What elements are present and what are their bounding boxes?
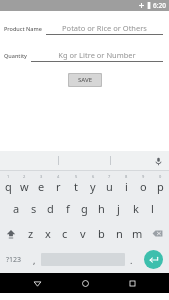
button[interactable]: c xyxy=(56,221,74,246)
button[interactable]: Backspace xyxy=(146,221,169,246)
button[interactable]: 6 xyxy=(84,171,101,196)
button[interactable]: v xyxy=(74,221,92,246)
staticText: Kg or Litre or Number xyxy=(31,50,163,60)
button[interactable]: 1 xyxy=(0,171,16,196)
staticText: f xyxy=(66,201,70,216)
button[interactable]: 2 xyxy=(16,171,33,196)
staticText: Quantity xyxy=(4,52,27,59)
button[interactable]: j xyxy=(110,196,127,221)
button[interactable]: 8 xyxy=(118,171,135,196)
staticText: Product Name xyxy=(4,25,42,32)
staticText: 9 xyxy=(142,174,145,179)
button[interactable]: 9 xyxy=(135,171,152,196)
staticText: b xyxy=(98,226,105,241)
staticText: , xyxy=(33,254,36,266)
button[interactable]: a xyxy=(8,196,25,221)
button[interactable]: Recents xyxy=(122,273,142,293)
button[interactable]: 0 xyxy=(152,171,169,196)
staticText: SAVE xyxy=(78,76,93,84)
staticText: z xyxy=(28,226,34,241)
staticText: v xyxy=(80,226,86,241)
button[interactable]: m xyxy=(128,221,146,246)
button[interactable]: 5 xyxy=(67,171,84,196)
staticText: k xyxy=(133,201,139,216)
staticText: s xyxy=(31,201,37,216)
staticText: i xyxy=(125,179,128,194)
staticText: m xyxy=(132,226,143,241)
staticText: 3 xyxy=(40,174,43,179)
button[interactable]: Home xyxy=(75,273,95,293)
staticText: 2 xyxy=(23,174,26,179)
button[interactable]: Kg or Litre or Number xyxy=(31,50,163,62)
button[interactable]: z xyxy=(22,221,39,246)
staticText: t xyxy=(74,179,78,194)
button[interactable]: l xyxy=(144,196,161,221)
staticText: u xyxy=(106,179,113,194)
staticText: h xyxy=(98,201,105,216)
staticText: r xyxy=(56,179,61,194)
button[interactable]: x xyxy=(39,221,56,246)
staticText: 1 xyxy=(7,174,10,179)
staticText: . xyxy=(130,254,133,266)
button[interactable]: f xyxy=(59,196,76,221)
button[interactable]: Enter xyxy=(144,250,163,269)
button[interactable]: Potato or Rice or Others xyxy=(46,23,163,35)
staticText: a xyxy=(13,201,20,216)
button[interactable]: ?123 xyxy=(0,246,28,273)
button[interactable]: k xyxy=(127,196,144,221)
button[interactable]: . xyxy=(125,246,138,273)
staticText: ?123 xyxy=(6,255,22,265)
staticText: o xyxy=(140,179,147,194)
button[interactable]: Back xyxy=(27,273,47,293)
button[interactable]: 4 xyxy=(50,171,67,196)
staticText: 6:20 xyxy=(153,1,166,10)
button[interactable]: h xyxy=(93,196,110,221)
staticText: q xyxy=(5,179,12,194)
button[interactable]: 3 xyxy=(33,171,50,196)
staticText: g xyxy=(81,201,88,216)
button[interactable]: b xyxy=(92,221,110,246)
staticText: x xyxy=(45,226,51,241)
button[interactable]: 7 xyxy=(101,171,118,196)
staticText: w xyxy=(20,179,29,194)
button[interactable]: Voice input xyxy=(152,155,164,167)
staticText: p xyxy=(157,179,164,194)
staticText: 8 xyxy=(125,174,128,179)
staticText: n xyxy=(116,226,123,241)
button[interactable]: d xyxy=(42,196,59,221)
staticText: y xyxy=(90,179,96,194)
staticText: Potato or Rice or Others xyxy=(46,23,163,33)
staticText: 7 xyxy=(108,174,111,179)
staticText: e xyxy=(38,179,45,194)
button[interactable]: , xyxy=(28,246,41,273)
button[interactable]: SAVE xyxy=(69,74,101,86)
button[interactable]: g xyxy=(76,196,93,221)
staticText: j xyxy=(117,201,120,216)
button[interactable]: n xyxy=(110,221,128,246)
button[interactable]: Shift xyxy=(0,221,22,246)
staticText: 0 xyxy=(159,174,162,179)
button[interactable]: s xyxy=(25,196,42,221)
staticText: d xyxy=(47,201,54,216)
staticText: l xyxy=(151,201,154,216)
staticText: c xyxy=(62,226,68,241)
staticText: 5 xyxy=(75,174,78,179)
staticText: 6 xyxy=(92,174,95,179)
staticText: 4 xyxy=(57,174,60,179)
